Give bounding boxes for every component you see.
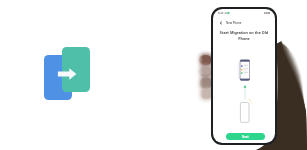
staticText: New Phone	[226, 21, 242, 25]
staticText: Start Migration on the Old Phone	[213, 30, 275, 41]
button[interactable]: Back	[218, 20, 224, 26]
staticText: Next	[242, 135, 249, 139]
button[interactable]: Next	[226, 133, 265, 140]
